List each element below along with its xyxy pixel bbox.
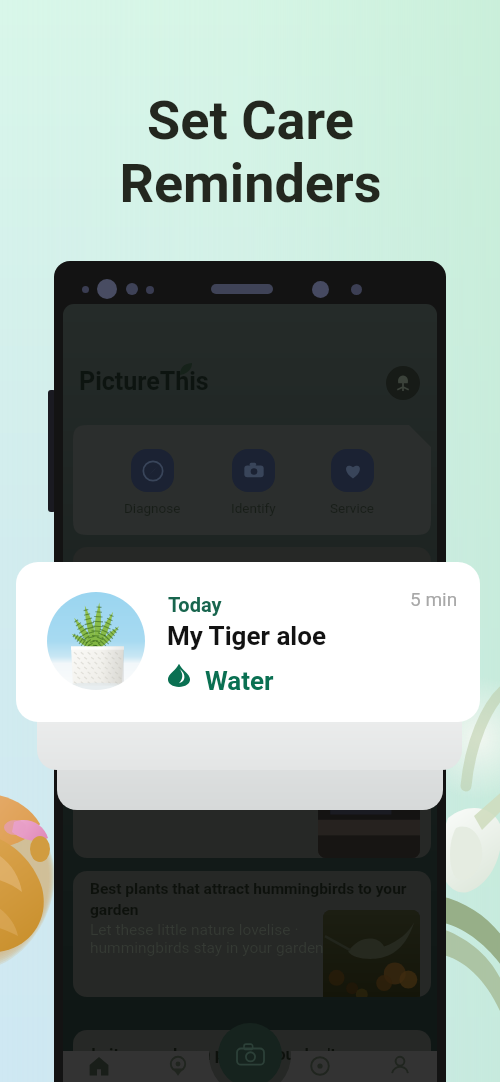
staticText: Service — [330, 500, 374, 516]
staticText: Reminders — [119, 152, 382, 215]
staticText: My Tiger aloe — [167, 621, 326, 651]
button[interactable]: Care — [305, 1051, 335, 1081]
button[interactable]: Diagnose — [116, 449, 188, 516]
button[interactable]: My garden — [386, 366, 420, 400]
button[interactable]: Camera — [218, 1023, 282, 1082]
staticText: Set Care — [147, 89, 354, 152]
button[interactable]: Home — [84, 1051, 114, 1081]
button[interactable]: Identify — [217, 449, 289, 516]
staticText: Let these little nature lovelise · hummi… — [90, 921, 342, 957]
button[interactable]: Today — [16, 562, 480, 722]
button[interactable]: Best plants that attract hummingbirds to… — [73, 871, 431, 997]
staticText: 5 min — [410, 588, 458, 610]
staticText: Identify — [231, 500, 276, 516]
staticText: Water — [205, 666, 274, 696]
staticText: Today — [168, 593, 222, 616]
button[interactable]: Service — [316, 449, 388, 516]
button[interactable]: Profile — [385, 1051, 415, 1081]
staticText: Is it a weed or a plant? You don't... — [91, 1044, 351, 1064]
button[interactable]: Explore — [163, 1051, 193, 1081]
staticText: PictureThis — [79, 367, 209, 396]
staticText: Best plants that attract hummingbirds to… — [90, 880, 422, 919]
staticText: Diagnose — [124, 500, 181, 516]
